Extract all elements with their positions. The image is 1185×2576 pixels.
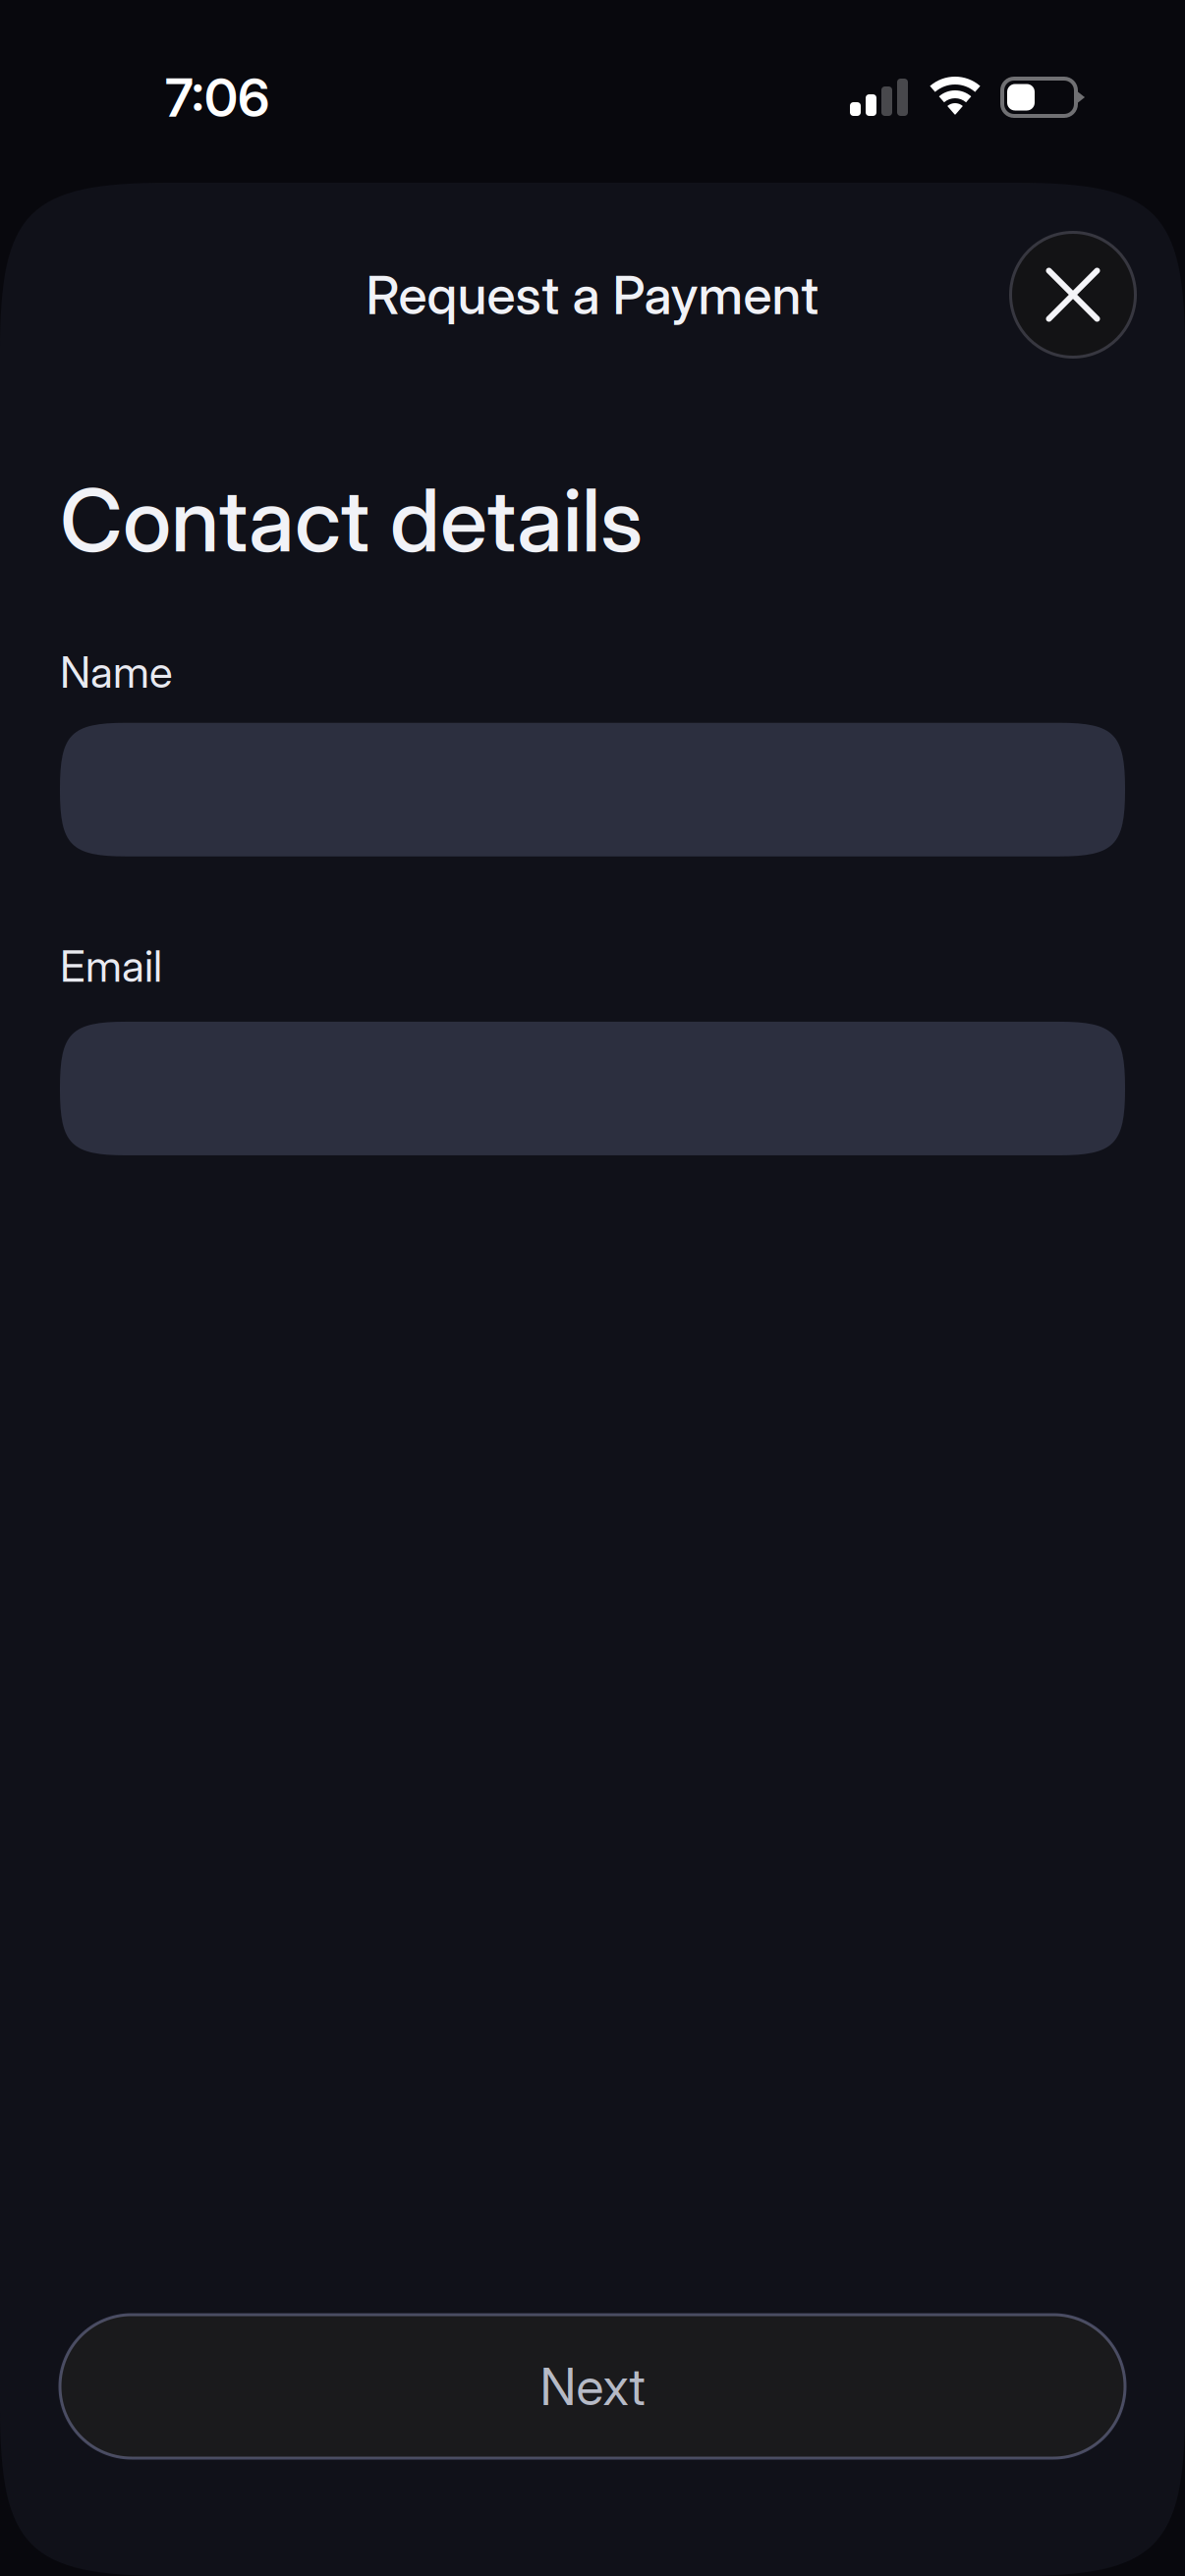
staticText: Next bbox=[540, 2355, 645, 2417]
button[interactable]: Close bbox=[1009, 231, 1137, 359]
staticText: Request a Payment bbox=[366, 263, 819, 327]
staticText: 7:06 bbox=[165, 66, 269, 129]
button[interactable]: Next bbox=[60, 2315, 1125, 2458]
staticText: Email bbox=[60, 940, 162, 992]
staticText: Name bbox=[60, 646, 173, 698]
staticText: Contact details bbox=[60, 468, 643, 572]
